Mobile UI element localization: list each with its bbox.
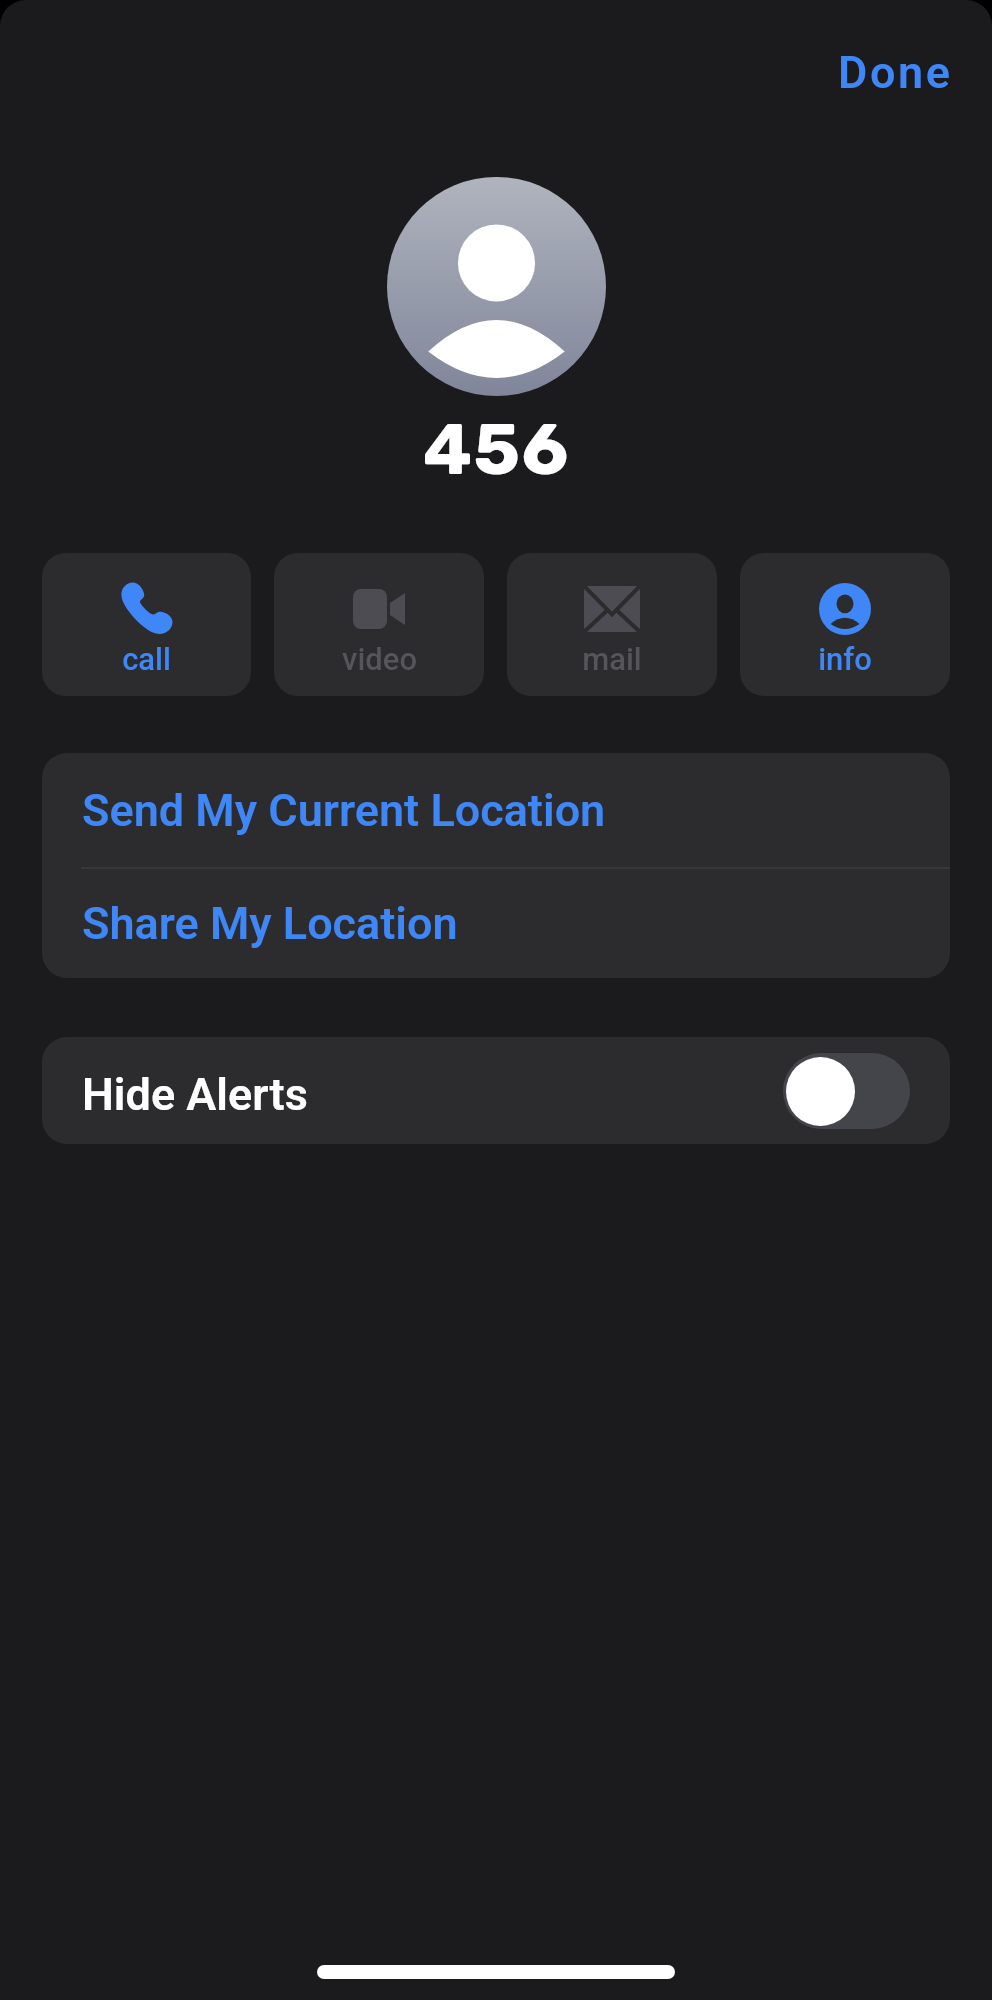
button[interactable]: video [274, 553, 484, 696]
button[interactable]: Share My Location [42, 869, 950, 978]
button[interactable]: Send My Current Location [42, 753, 950, 867]
staticText: 456 [423, 407, 570, 492]
staticText: Send My Current Location [82, 784, 606, 837]
button[interactable]: call [42, 553, 251, 696]
staticText: Hide Alerts [82, 1068, 783, 1121]
staticText: Done [838, 46, 953, 99]
staticText: Share My Location [82, 897, 458, 950]
staticText: info [818, 641, 872, 677]
button[interactable]: Hide Alerts [42, 1037, 950, 1144]
staticText: call [122, 641, 171, 677]
button[interactable]: info [740, 553, 950, 696]
button[interactable]: Hide Alerts toggle [783, 1053, 910, 1129]
staticText: mail [582, 641, 642, 677]
staticText: video [342, 641, 417, 677]
button[interactable]: mail [507, 553, 717, 696]
button[interactable]: Done [799, 32, 992, 113]
